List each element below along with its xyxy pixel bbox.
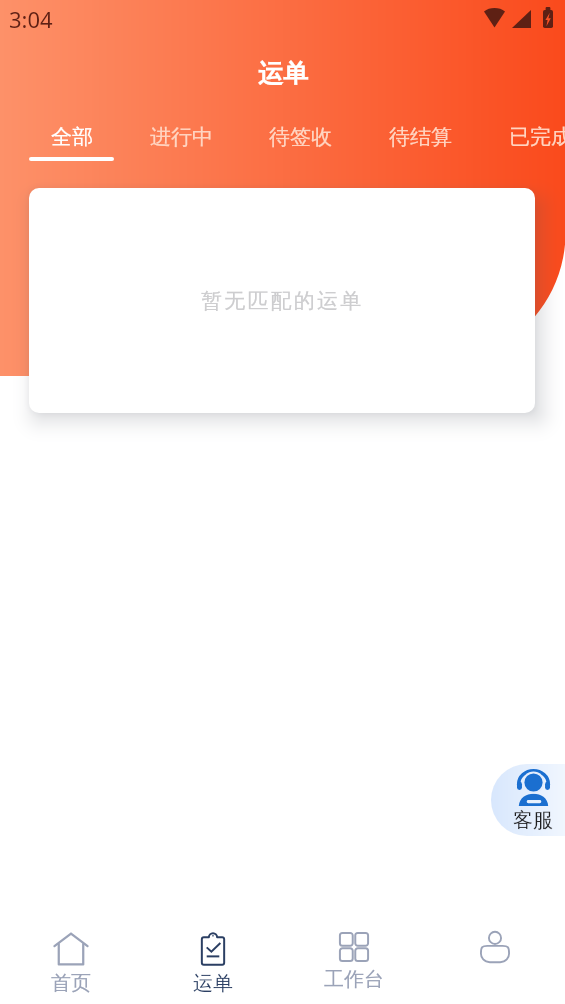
other: Wi-Fi: [484, 8, 505, 28]
staticText: 运单: [258, 58, 308, 89]
staticText: 暂无匹配的运单: [201, 288, 364, 314]
staticText: 3:04: [9, 4, 53, 34]
button[interactable]: 待结算: [372, 124, 468, 166]
button[interactable]: 运单: [142, 904, 283, 1004]
button[interactable]: 暂无匹配的运单: [29, 188, 535, 413]
staticText: 待签收: [269, 124, 332, 150]
button[interactable]: 首页: [0, 904, 142, 1004]
staticText: 全部: [51, 124, 93, 150]
button[interactable]: 全部: [28, 124, 114, 166]
staticText: 工作台: [324, 967, 384, 992]
staticText: 进行中: [150, 124, 213, 150]
other: Mobile signal: [512, 10, 531, 28]
button[interactable]: 进行中: [133, 124, 229, 166]
staticText: 客服: [513, 808, 553, 833]
button[interactable]: 客服: [491, 764, 565, 836]
button[interactable]: 已完成: [492, 124, 565, 166]
button[interactable]: [424, 904, 565, 1004]
staticText: 已完成: [509, 124, 565, 150]
button[interactable]: 待签收: [252, 124, 348, 166]
other: Battery charging: [543, 7, 553, 28]
staticText: 运单: [193, 971, 233, 996]
button[interactable]: 工作台: [283, 904, 424, 1004]
staticText: 待结算: [389, 124, 452, 150]
staticText: 首页: [51, 971, 91, 996]
